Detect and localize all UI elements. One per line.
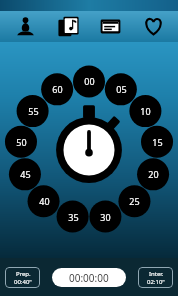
staticText: 05 (116, 83, 127, 95)
staticText: 20 (148, 168, 159, 180)
button[interactable]: 55 (17, 95, 49, 127)
button[interactable]: 20 (137, 158, 169, 190)
staticText: 00:00:00 (69, 271, 109, 285)
staticText: 00:40" (14, 278, 32, 286)
button[interactable]: 60 (41, 73, 73, 105)
button[interactable]: 10 (129, 95, 161, 127)
button[interactable]: 40 (28, 185, 60, 217)
staticText: Prep. (16, 270, 31, 278)
staticText: 35 (68, 211, 79, 223)
button[interactable]: 45 (9, 158, 41, 190)
staticText: 55 (28, 105, 39, 117)
staticText: 02:10" (147, 278, 165, 286)
staticText: 30 (100, 211, 111, 223)
staticText: 25 (129, 195, 140, 207)
button[interactable]: 30 (89, 201, 121, 233)
button[interactable]: Music (51, 11, 85, 42)
staticText: 40 (39, 195, 50, 207)
staticText: 45 (20, 168, 31, 180)
button[interactable]: 00:00:00 (52, 268, 126, 287)
button[interactable]: 35 (57, 201, 89, 233)
button[interactable]: Prep. (5, 267, 40, 288)
staticText: 60 (52, 83, 63, 95)
button[interactable]: 00 (73, 65, 105, 97)
button[interactable]: 05 (105, 73, 137, 105)
staticText: 50 (16, 136, 27, 148)
button[interactable]: Meditation (8, 11, 42, 42)
button[interactable]: 15 (141, 126, 173, 158)
button[interactable]: Inter. (138, 267, 173, 288)
staticText: Inter. (149, 270, 164, 278)
staticText: 15 (152, 136, 163, 148)
staticText: 00 (84, 75, 95, 87)
staticText: 10 (140, 105, 151, 117)
button[interactable]: Notes (93, 11, 127, 42)
button[interactable]: 50 (5, 126, 37, 158)
button[interactable]: 25 (118, 185, 150, 217)
button[interactable]: Favourites (136, 11, 170, 42)
